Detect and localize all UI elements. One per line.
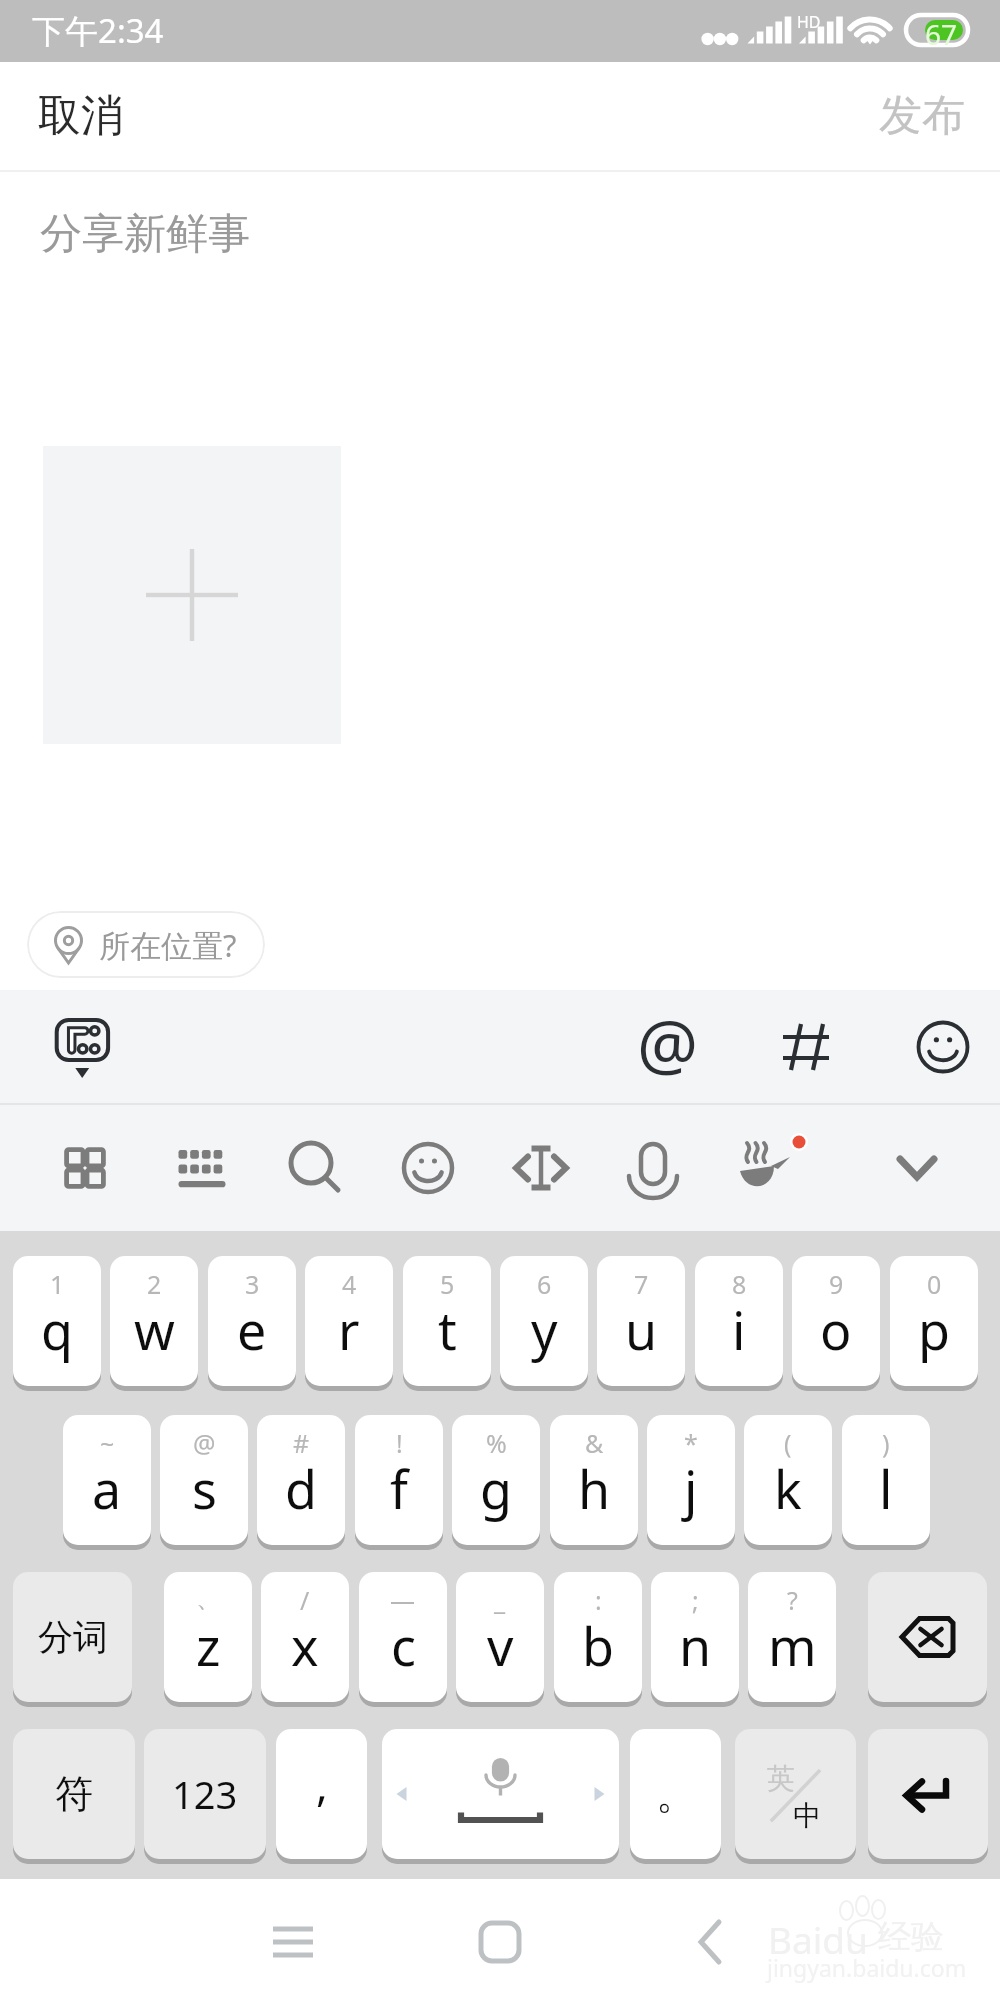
button[interactable]: Search [270, 1123, 360, 1213]
button[interactable]: Sticker panel [12, 990, 152, 1104]
staticText: i [732, 1294, 746, 1365]
staticText: s [192, 1453, 217, 1524]
button[interactable]: 符 [13, 1729, 135, 1859]
staticText: 中 [793, 1798, 821, 1833]
button[interactable]: r [305, 1256, 393, 1386]
staticText: jingyan.baidu.com [767, 1952, 967, 1983]
button[interactable]: e [208, 1256, 296, 1386]
button[interactable]: x [261, 1572, 349, 1702]
staticText: 3 [245, 1267, 260, 1301]
button[interactable]: Enter [868, 1729, 988, 1859]
button[interactable]: l [842, 1415, 930, 1545]
staticText: 。 [656, 1769, 696, 1819]
staticText: — [390, 1583, 416, 1617]
staticText: 发布 [879, 89, 965, 143]
button[interactable]: b [554, 1572, 642, 1702]
button[interactable]: z [164, 1572, 252, 1702]
staticText: ; [692, 1583, 699, 1617]
button[interactable]: d [257, 1415, 345, 1545]
staticText: _ [494, 1583, 506, 1617]
button[interactable]: o [792, 1256, 880, 1386]
button[interactable]: t [403, 1256, 491, 1386]
button[interactable]: u [597, 1256, 685, 1386]
button[interactable]: Add topic [761, 1002, 851, 1092]
staticText: ? [787, 1583, 798, 1617]
staticText: @ [637, 996, 699, 1086]
button[interactable]: 发布 [849, 67, 1000, 165]
button[interactable]: Hide keyboard [872, 1123, 962, 1213]
staticText: 5 [440, 1267, 455, 1301]
button[interactable]: k [744, 1415, 832, 1545]
button[interactable]: 取消 [0, 67, 154, 165]
button[interactable]: s [160, 1415, 248, 1545]
button[interactable]: c [359, 1572, 447, 1702]
staticText: 2 [147, 1267, 162, 1301]
staticText: ) [882, 1426, 890, 1460]
button[interactable]: 123 [144, 1729, 266, 1859]
staticText: r [338, 1294, 360, 1365]
staticText: y [531, 1294, 558, 1365]
staticText: : [595, 1583, 602, 1617]
staticText: ! [396, 1426, 403, 1460]
button[interactable]: i [695, 1256, 783, 1386]
button[interactable]: Voice input [608, 1123, 698, 1213]
button[interactable]: Keyboard layout [157, 1123, 247, 1213]
staticText: h [578, 1453, 611, 1524]
staticText: g [480, 1453, 512, 1524]
button[interactable]: Emoji [383, 1123, 473, 1213]
button[interactable]: Back [665, 1897, 755, 1987]
staticText: e [237, 1294, 267, 1365]
staticText: 7 [634, 1267, 649, 1301]
button[interactable]: Mention someone [623, 1002, 713, 1092]
button[interactable]: 。 [630, 1729, 721, 1859]
staticText: k [774, 1453, 802, 1524]
button[interactable]: p [890, 1256, 978, 1386]
button[interactable]: Move cursor [496, 1123, 586, 1213]
staticText: n [679, 1610, 712, 1681]
button[interactable]: 分词 [13, 1572, 132, 1702]
button[interactable]: n [651, 1572, 739, 1702]
staticText: 所在位置? [99, 924, 237, 966]
staticText: 4 [342, 1267, 357, 1301]
button[interactable]: w [110, 1256, 198, 1386]
staticText: u [625, 1294, 658, 1365]
staticText: d [285, 1453, 317, 1524]
button[interactable]: v [456, 1572, 544, 1702]
button[interactable]: Skin [721, 1123, 811, 1213]
staticText: ( [784, 1426, 792, 1460]
button[interactable]: y [500, 1256, 588, 1386]
staticText: 取消 [38, 89, 124, 143]
button[interactable]: f [355, 1415, 443, 1545]
staticText: , [316, 1754, 328, 1814]
button[interactable]: g [452, 1415, 540, 1545]
staticText: w [134, 1294, 175, 1365]
button[interactable]: Panels [40, 1123, 130, 1213]
button[interactable]: h [550, 1415, 638, 1545]
staticText: # [293, 1426, 310, 1460]
staticText: j [684, 1453, 698, 1524]
staticText: 符 [55, 1770, 93, 1818]
button[interactable]: , [276, 1729, 367, 1859]
button[interactable]: m [748, 1572, 836, 1702]
button[interactable]: j [647, 1415, 735, 1545]
button[interactable]: Backspace [868, 1572, 987, 1702]
staticText: 、 [196, 1583, 221, 1614]
button[interactable]: Switch English Chinese [735, 1729, 856, 1859]
staticText: a [92, 1453, 122, 1524]
button[interactable]: Space [382, 1729, 619, 1859]
staticText: @ [193, 1426, 216, 1460]
staticText: Baidu [768, 1914, 868, 1964]
staticText: m [768, 1610, 817, 1681]
staticText: / [300, 1583, 310, 1617]
button[interactable]: a [63, 1415, 151, 1545]
button[interactable]: Home [455, 1897, 545, 1987]
button[interactable]: Emoji [898, 1002, 988, 1092]
staticText: ~ [100, 1426, 115, 1460]
staticText: 分享新鲜事 [40, 208, 250, 261]
button[interactable]: 所在位置? [27, 911, 265, 978]
staticText: q [41, 1294, 73, 1365]
button[interactable]: Menu [248, 1897, 338, 1987]
button[interactable]: q [13, 1256, 101, 1386]
staticText: 英 [767, 1761, 795, 1796]
